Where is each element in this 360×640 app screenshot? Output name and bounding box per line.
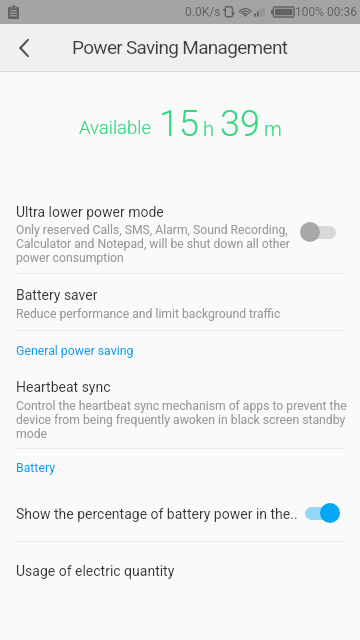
staticText: 39: [220, 103, 260, 145]
button[interactable]: Turn on: [300, 220, 340, 244]
staticText: Only reserved Calls, SMS, Alarm, Sound R…: [16, 223, 296, 265]
staticText: Power Saving Management: [72, 36, 288, 58]
button[interactable]: Show the percentage of battery power in …: [16, 506, 298, 522]
staticText: 00:36: [327, 5, 357, 19]
button[interactable]: Usage of electric quantity: [16, 563, 175, 579]
staticText: h: [203, 117, 214, 140]
button[interactable]: Heartbeat sync: [16, 379, 111, 395]
staticText: 15: [159, 103, 199, 145]
staticText: Battery: [16, 461, 56, 475]
button[interactable]: Ultra lower power mode: [16, 204, 164, 220]
staticText: General power saving: [16, 344, 134, 358]
staticText: m: [264, 117, 282, 140]
button[interactable]: Turn off: [300, 501, 340, 525]
button[interactable]: Back: [0, 24, 48, 71]
staticText: Control the heartbeat sync mechanism of …: [16, 399, 348, 441]
staticText: 100%: [295, 5, 325, 19]
staticText: Available: [79, 117, 151, 139]
staticText: 0.0K/s: [185, 5, 221, 19]
button[interactable]: Battery saver: [16, 287, 98, 303]
staticText: Reduce performance and limit background …: [16, 307, 316, 321]
